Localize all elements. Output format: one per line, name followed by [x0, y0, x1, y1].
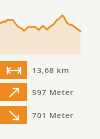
staticText: 597 Meter [32, 87, 74, 98]
button[interactable]: Distance [0, 61, 100, 79]
button[interactable]: Descent [0, 106, 100, 124]
staticText: 13,68 km [32, 65, 70, 76]
other: Ascent [0, 83, 27, 101]
staticText: 701 Meter [32, 110, 74, 121]
button[interactable]: Ascent [0, 83, 100, 101]
other: Descent [0, 106, 27, 124]
other: Distance [0, 61, 27, 79]
